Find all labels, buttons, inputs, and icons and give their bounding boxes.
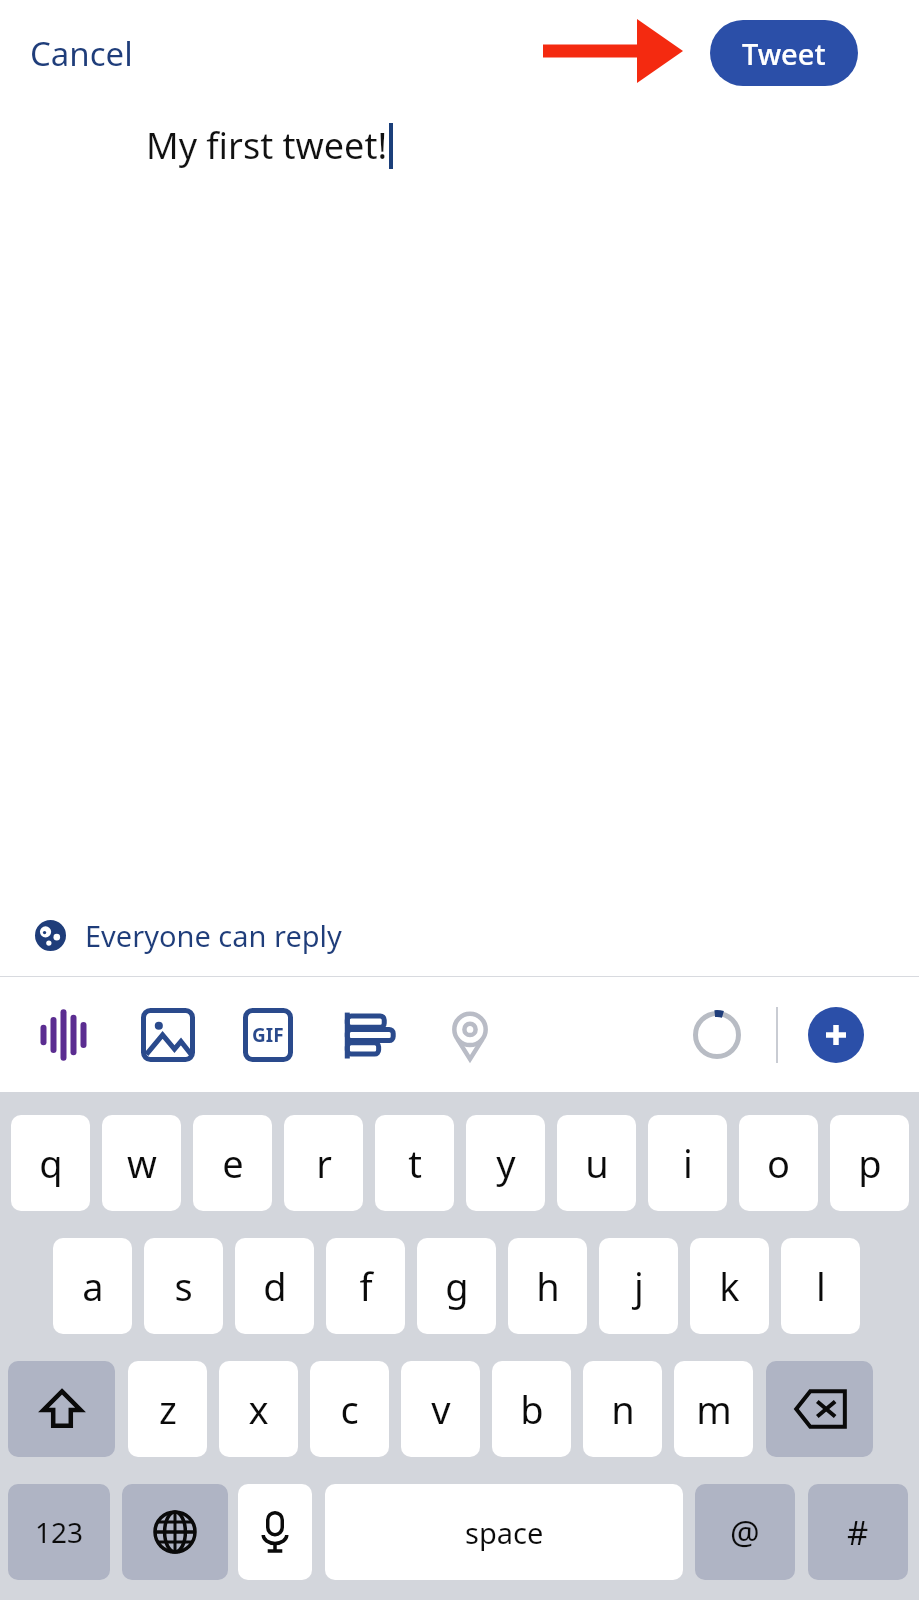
staticText: m xyxy=(696,1383,732,1435)
staticText: space xyxy=(465,1513,544,1552)
staticText: s xyxy=(174,1260,193,1312)
staticText: h xyxy=(536,1260,560,1312)
button[interactable]: y xyxy=(466,1115,545,1211)
button[interactable]: c xyxy=(310,1361,389,1457)
button[interactable]: s xyxy=(144,1238,223,1334)
button[interactable]: Add tweet xyxy=(808,1007,864,1063)
button[interactable]: i xyxy=(648,1115,727,1211)
button[interactable]: h xyxy=(508,1238,587,1334)
button[interactable]: q xyxy=(11,1115,90,1211)
staticText: a xyxy=(82,1260,104,1312)
staticText: My first tweet! xyxy=(146,121,388,170)
button[interactable]: Add GIF xyxy=(232,1004,304,1066)
staticText: GIF xyxy=(252,1022,284,1048)
staticText: f xyxy=(359,1260,373,1312)
button[interactable]: g xyxy=(417,1238,496,1334)
button[interactable]: Voice recording xyxy=(30,1004,102,1066)
button[interactable]: Backspace xyxy=(766,1361,873,1457)
staticText: Tweet xyxy=(742,34,826,73)
button[interactable]: k xyxy=(690,1238,769,1334)
staticText: 123 xyxy=(35,1513,84,1551)
staticText: p xyxy=(858,1137,882,1189)
staticText: v xyxy=(431,1383,451,1435)
button[interactable]: Add photo xyxy=(132,1004,204,1066)
button[interactable]: b xyxy=(492,1361,571,1457)
button[interactable]: t xyxy=(375,1115,454,1211)
staticText: y xyxy=(496,1137,516,1189)
staticText: k xyxy=(719,1260,740,1312)
button[interactable]: u xyxy=(557,1115,636,1211)
button[interactable]: m xyxy=(674,1361,753,1457)
button[interactable]: Cancel xyxy=(26,25,137,82)
button[interactable]: Change keyboard language xyxy=(122,1484,228,1580)
staticText: Everyone can reply xyxy=(85,916,342,955)
staticText: t xyxy=(408,1137,422,1189)
button[interactable]: Character count xyxy=(684,1002,750,1068)
button[interactable]: Tweet xyxy=(710,20,858,86)
staticText: d xyxy=(263,1260,287,1312)
staticText: r xyxy=(316,1137,332,1189)
button[interactable]: l xyxy=(781,1238,860,1334)
staticText: l xyxy=(816,1260,826,1312)
button[interactable]: # xyxy=(808,1484,908,1580)
staticText: x xyxy=(248,1383,269,1435)
button[interactable]: a xyxy=(53,1238,132,1334)
button[interactable]: o xyxy=(739,1115,818,1211)
staticText: w xyxy=(127,1137,157,1189)
staticText: e xyxy=(222,1137,244,1189)
staticText: Cancel xyxy=(30,31,133,76)
button[interactable]: Shift xyxy=(8,1361,115,1457)
button[interactable]: Everyone can reply xyxy=(0,894,919,976)
staticText: o xyxy=(767,1137,790,1189)
button[interactable]: Add poll xyxy=(332,1004,404,1066)
button[interactable]: 123 xyxy=(8,1484,110,1580)
button[interactable]: f xyxy=(326,1238,405,1334)
staticText: # xyxy=(847,1510,869,1555)
staticText: q xyxy=(39,1137,63,1189)
button[interactable]: j xyxy=(599,1238,678,1334)
staticText: c xyxy=(340,1383,359,1435)
button[interactable]: @ xyxy=(695,1484,795,1580)
button[interactable]: r xyxy=(284,1115,363,1211)
staticText: g xyxy=(445,1260,469,1312)
staticText: u xyxy=(585,1137,609,1189)
button[interactable]: x xyxy=(219,1361,298,1457)
button[interactable]: space xyxy=(325,1484,683,1580)
button[interactable]: v xyxy=(401,1361,480,1457)
staticText: n xyxy=(611,1383,635,1435)
button[interactable]: p xyxy=(830,1115,909,1211)
button[interactable]: w xyxy=(102,1115,181,1211)
button[interactable]: n xyxy=(583,1361,662,1457)
button[interactable]: Voice input xyxy=(238,1484,312,1580)
staticText: i xyxy=(683,1137,693,1189)
staticText: @ xyxy=(730,1510,760,1555)
staticText: j xyxy=(634,1260,644,1312)
button[interactable]: d xyxy=(235,1238,314,1334)
staticText: b xyxy=(520,1383,544,1435)
staticText: z xyxy=(159,1383,177,1435)
button[interactable]: z xyxy=(128,1361,207,1457)
button[interactable]: e xyxy=(193,1115,272,1211)
button[interactable]: Add location xyxy=(434,1004,506,1066)
